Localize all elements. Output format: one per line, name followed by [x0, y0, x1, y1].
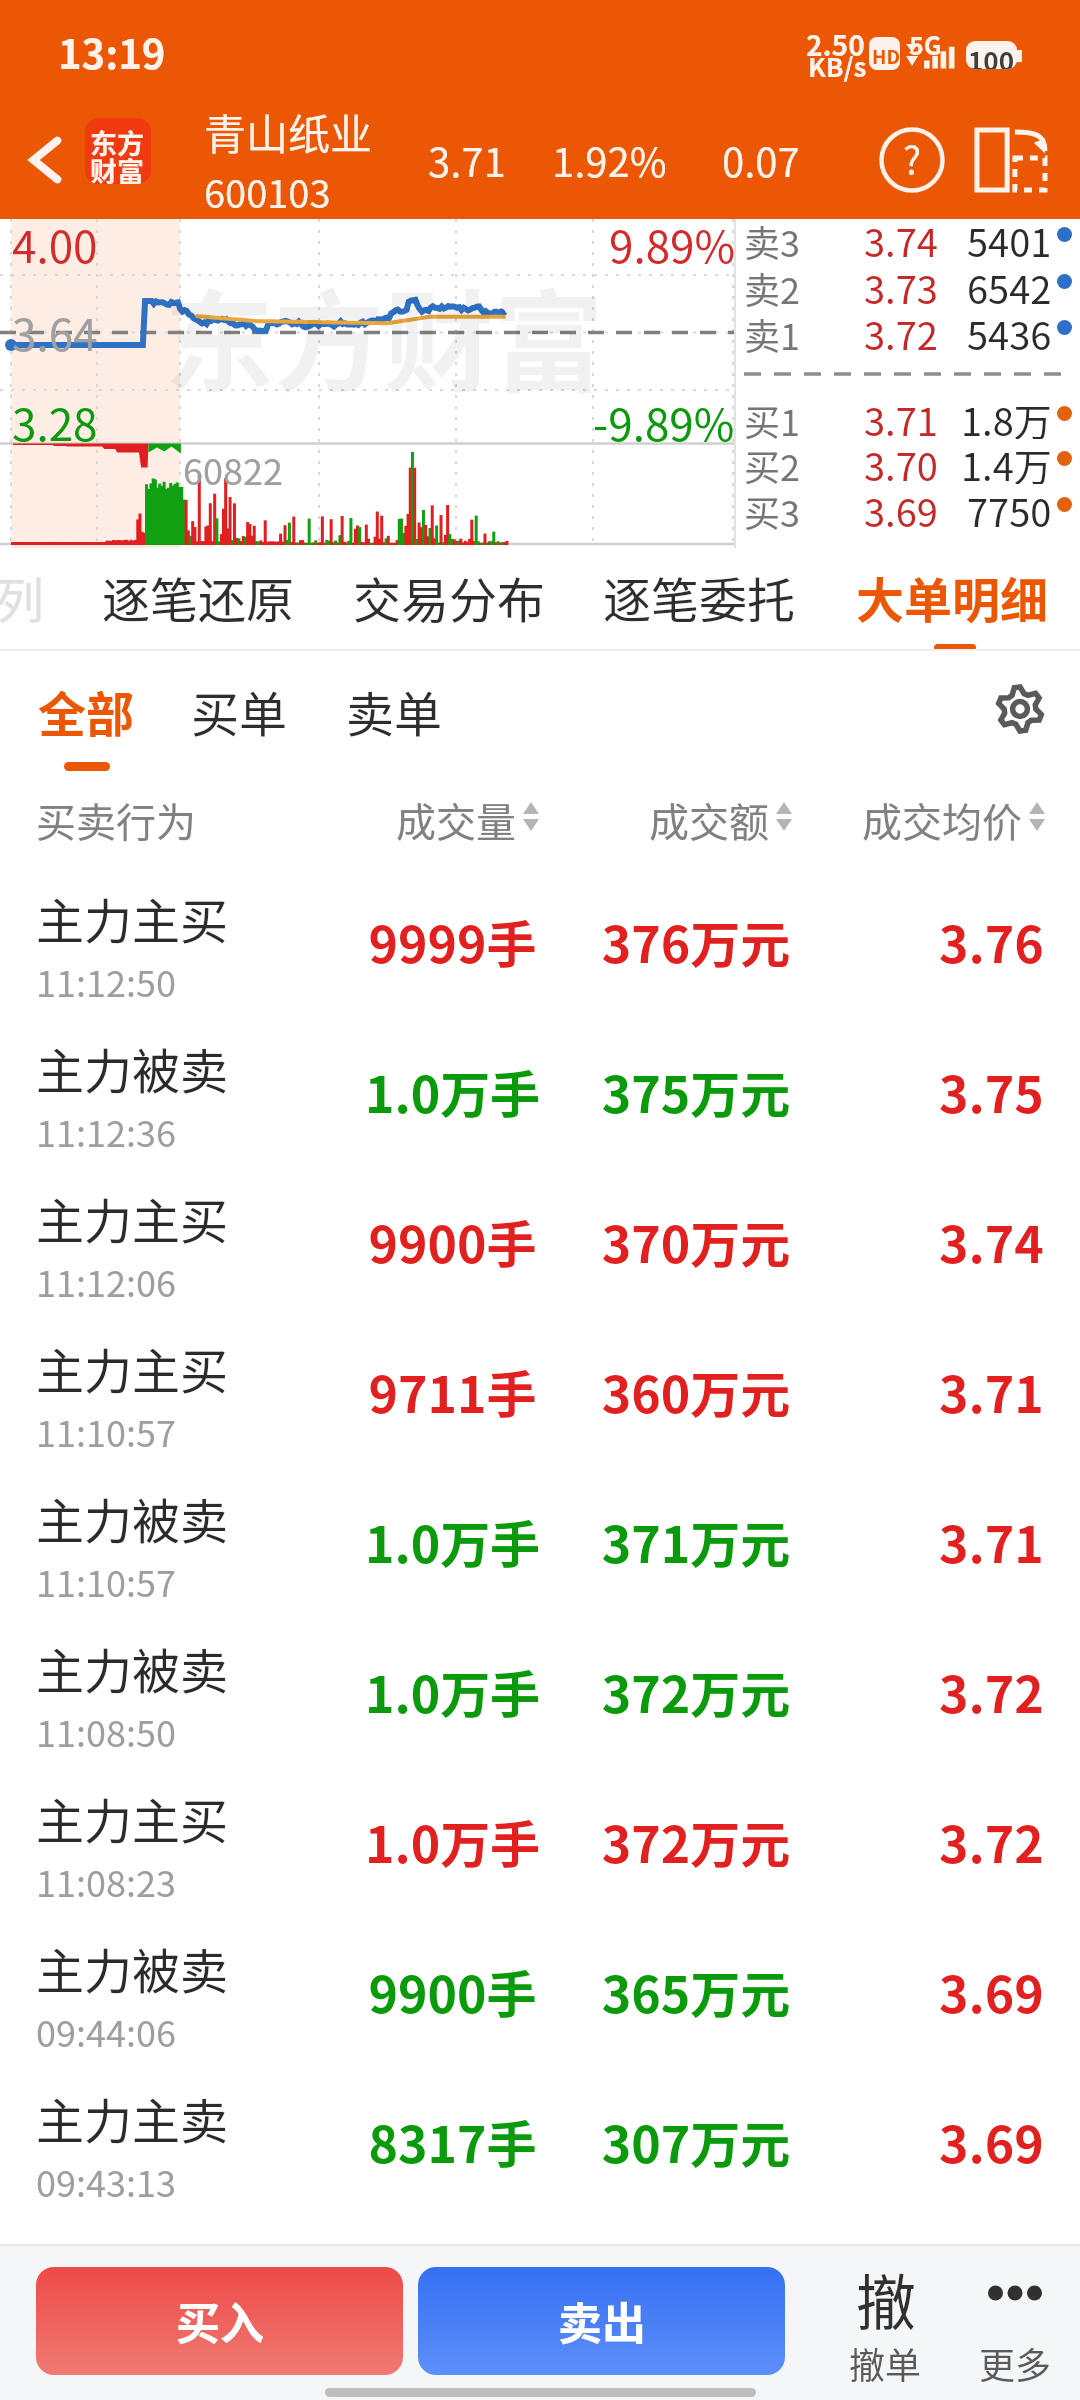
button[interactable]: 全部: [28, 676, 145, 771]
staticText: 列: [0, 562, 45, 632]
staticText: -9.89%: [593, 390, 735, 454]
button[interactable]: 主力被卖: [0, 1460, 1080, 1610]
staticText: 3.75: [939, 1055, 1044, 1127]
staticText: 360万元: [566, 1355, 826, 1427]
staticText: 600103: [204, 164, 331, 219]
staticText: 卖单: [346, 676, 443, 746]
staticText: 3.28: [12, 390, 98, 454]
button[interactable]: 卖1: [736, 305, 1080, 352]
staticText: 逐笔委托: [603, 562, 796, 632]
staticText: 主力主买: [36, 883, 229, 953]
staticText: 9900手: [320, 1205, 585, 1277]
staticText: 东方财富: [164, 255, 604, 414]
staticText: 3.76: [939, 905, 1044, 977]
staticText: 成交量: [396, 791, 516, 849]
staticText: 11:12:06: [36, 1255, 176, 1307]
staticText: 4.00: [12, 212, 98, 276]
staticText: 3.71: [939, 1505, 1044, 1577]
staticText: 11:10:57: [36, 1405, 176, 1457]
staticText: 买3: [744, 485, 800, 532]
staticText: 09:43:13: [36, 2155, 176, 2207]
button[interactable]: 主力被卖: [0, 1010, 1080, 1160]
button[interactable]: 主力主买: [0, 1310, 1080, 1460]
staticText: 大单明细: [856, 562, 1049, 632]
staticText: 主力主买: [36, 1183, 229, 1253]
staticText: 9711手: [320, 1355, 585, 1427]
staticText: 60822: [183, 443, 283, 495]
staticText: 卖出: [558, 2289, 646, 2353]
staticText: 买入: [176, 2289, 264, 2353]
staticText: 东方: [90, 123, 144, 162]
staticText: 3.69: [864, 483, 938, 530]
staticText: 3.72: [864, 306, 938, 353]
staticText: 11:08:50: [36, 1705, 176, 1757]
button[interactable]: 买单: [181, 676, 298, 746]
staticText: 7750: [967, 483, 1052, 530]
staticText: 主力被卖: [36, 1033, 229, 1103]
button[interactable]: 买1: [736, 391, 1080, 438]
button[interactable]: 逐笔还原: [92, 548, 305, 646]
staticText: 11:08:23: [36, 1855, 176, 1907]
button[interactable]: 卖2: [736, 259, 1080, 306]
staticText: 青山纸业: [204, 101, 373, 162]
button[interactable]: 买3: [736, 482, 1080, 529]
staticText: 3.74: [864, 213, 938, 260]
button[interactable]: 逐笔委托: [593, 548, 806, 646]
staticText: 3.74: [939, 1205, 1044, 1277]
button[interactable]: Split screen: [965, 115, 1055, 205]
staticText: 9.89%: [609, 212, 736, 276]
staticText: KB/s: [808, 47, 867, 85]
staticText: 5436: [967, 306, 1052, 353]
staticText: 主力被卖: [36, 1483, 229, 1553]
button[interactable]: 主力主买: [0, 1160, 1080, 1310]
button[interactable]: 卖3: [736, 212, 1080, 259]
button[interactable]: Back: [6, 121, 84, 199]
staticText: 375万元: [566, 1055, 826, 1127]
button[interactable]: 主力主卖: [0, 2060, 1080, 2210]
staticText: 主力被卖: [36, 1633, 229, 1703]
button[interactable]: Help: [866, 114, 958, 206]
button[interactable]: 成交额: [649, 791, 794, 849]
staticText: 3.70: [864, 437, 938, 484]
staticText: 8317手: [320, 2105, 585, 2177]
button[interactable]: 交易分布: [343, 548, 556, 646]
staticText: 成交额: [649, 791, 769, 849]
staticText: 9900手: [320, 1955, 585, 2027]
button[interactable]: 成交量: [396, 791, 541, 849]
staticText: 2.50: [806, 24, 865, 65]
button[interactable]: 主力被卖: [0, 1610, 1080, 1760]
staticText: 372万元: [566, 1805, 826, 1877]
staticText: 成交均价: [862, 791, 1022, 849]
staticText: 3.71: [428, 131, 506, 189]
staticText: 卖3: [744, 215, 800, 262]
button[interactable]: 买入: [36, 2267, 403, 2375]
staticText: 主力被卖: [36, 1933, 229, 2003]
staticText: 09:44:06: [36, 2005, 176, 2057]
staticText: 3.71: [939, 1355, 1044, 1427]
staticText: 更多: [979, 2337, 1052, 2389]
button[interactable]: 撤: [830, 2252, 950, 2400]
button[interactable]: 卖单: [336, 676, 453, 746]
staticText: 1.0万手: [320, 1805, 585, 1877]
button[interactable]: 主力被卖: [0, 1910, 1080, 2060]
staticText: 撤单: [849, 2337, 922, 2389]
button[interactable]: 大单明细: [846, 548, 1058, 651]
staticText: 1.8万: [961, 392, 1052, 439]
button[interactable]: 卖出: [418, 2267, 785, 2375]
staticText: 6542: [967, 260, 1052, 307]
staticText: 买1: [744, 394, 800, 441]
staticText: 1.4万: [961, 437, 1052, 484]
staticText: ?: [903, 131, 922, 186]
button[interactable]: 主力主买: [0, 1760, 1080, 1910]
staticText: 3.73: [864, 260, 938, 307]
staticText: 5G: [909, 26, 942, 62]
button[interactable]: More: [960, 2252, 1080, 2400]
button[interactable]: 主力主买: [0, 860, 1080, 1010]
button[interactable]: Settings: [984, 673, 1056, 745]
button[interactable]: 成交均价: [862, 791, 1047, 849]
staticText: 主力主卖: [36, 2083, 229, 2153]
button[interactable]: 买2: [736, 436, 1080, 483]
button[interactable]: East Money: [85, 118, 151, 184]
staticText: 主力主买: [36, 1783, 229, 1853]
staticText: HD: [872, 42, 900, 70]
